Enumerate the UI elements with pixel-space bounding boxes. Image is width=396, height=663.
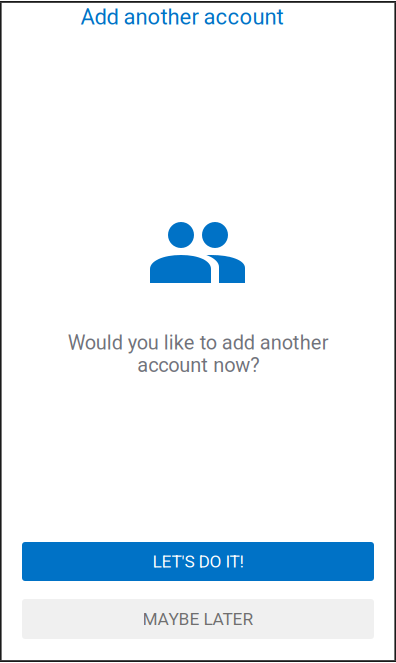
- staticText: MAYBE LATER: [142, 609, 253, 629]
- staticText: Add another account: [80, 4, 283, 30]
- button[interactable]: LET'S DO IT!: [22, 542, 374, 581]
- staticText: LET'S DO IT!: [152, 551, 243, 572]
- button[interactable]: MAYBE LATER: [22, 599, 374, 639]
- staticText: Would you like to add another account no…: [67, 331, 328, 377]
